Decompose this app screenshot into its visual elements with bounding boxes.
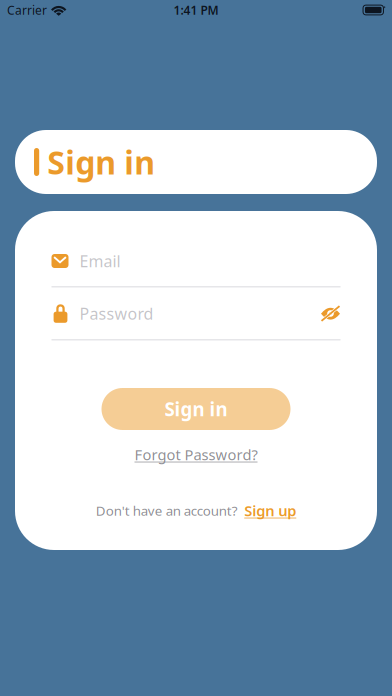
button[interactable]: Forgot Password? (134, 444, 257, 464)
button[interactable]: Sign up (244, 501, 296, 520)
staticText: Carrier (7, 2, 47, 18)
staticText: Password (79, 303, 153, 324)
button[interactable]: Sign in (101, 388, 290, 430)
staticText: Sign in (164, 397, 227, 421)
staticText: 1:41 PM (173, 2, 218, 18)
button[interactable]: Email (51, 251, 340, 271)
staticText: Sign up (244, 501, 296, 520)
staticText: Email (79, 250, 120, 272)
staticText: Sign in (47, 141, 155, 183)
button[interactable]: Show password (320, 305, 340, 321)
staticText: Forgot Password? (134, 445, 257, 464)
staticText: Don't have an account? (96, 502, 238, 519)
button[interactable]: Password (51, 300, 306, 326)
